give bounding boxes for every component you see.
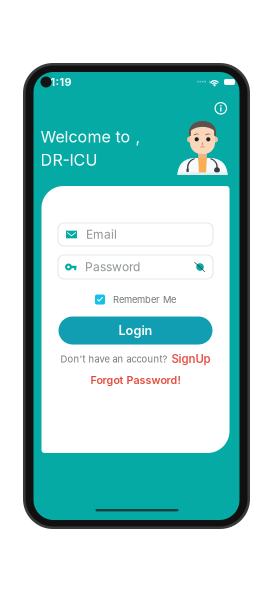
button[interactable]: SignUp — [171, 352, 210, 366]
button[interactable]: Information — [214, 102, 227, 115]
staticText: DR-ICU — [40, 150, 97, 170]
button[interactable]: Forgot Password! — [90, 374, 180, 385]
button[interactable]: Email — [58, 223, 213, 246]
staticText: Welcome to , — [40, 127, 140, 146]
button[interactable]: Password — [58, 255, 213, 279]
staticText: Remember Me — [113, 294, 176, 305]
button[interactable]: Login — [58, 316, 212, 344]
staticText: Password — [85, 260, 140, 274]
staticText: SignUp — [171, 352, 210, 366]
button[interactable]: Remember Me — [95, 294, 176, 304]
staticText: 1:19 — [50, 75, 71, 88]
staticText: Email — [86, 227, 117, 242]
staticText: Forgot Password! — [90, 373, 180, 386]
staticText: Don't have an account? — [60, 353, 167, 365]
staticText: Login — [118, 323, 152, 338]
